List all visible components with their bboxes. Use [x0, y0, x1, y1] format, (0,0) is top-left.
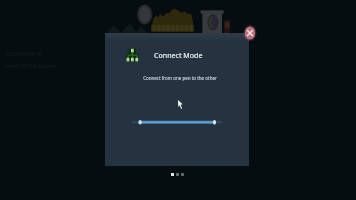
- button[interactable]: Close: [243, 25, 257, 41]
- staticText: 2020/3/10 8:16: [5, 50, 42, 57]
- staticText: Connect Mode: [154, 50, 203, 60]
- staticText: email_3076@qq.com: [5, 62, 56, 69]
- button[interactable]: Connection slider: [129, 115, 225, 129]
- staticText: Connect from one pen to the other: [108, 75, 252, 81]
